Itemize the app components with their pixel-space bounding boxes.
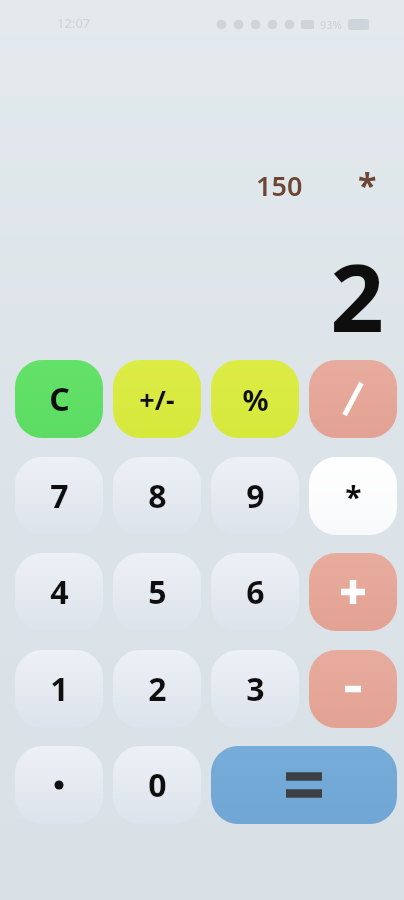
button[interactable]: Subtract: [309, 650, 397, 728]
staticText: 1: [50, 667, 69, 711]
staticText: 8: [148, 474, 167, 518]
button[interactable]: 5: [113, 553, 201, 631]
staticText: 6: [246, 570, 265, 614]
staticText: 5: [148, 570, 167, 614]
button[interactable]: Multiply: [309, 457, 397, 535]
button[interactable]: 1: [15, 650, 103, 728]
staticText: 150: [256, 167, 303, 204]
staticText: 2: [148, 667, 167, 711]
button[interactable]: +/-: [113, 360, 201, 438]
button[interactable]: C: [15, 360, 103, 438]
button[interactable]: 7: [15, 457, 103, 535]
staticText: 0: [148, 763, 167, 807]
staticText: 9: [246, 474, 265, 518]
button[interactable]: %: [211, 360, 299, 438]
staticText: 4: [50, 570, 69, 614]
staticText: +/-: [139, 381, 175, 418]
staticText: 7: [50, 474, 69, 518]
button[interactable]: Equals: [211, 746, 397, 824]
button[interactable]: Decimal point: [15, 746, 103, 824]
button[interactable]: 2: [113, 650, 201, 728]
button[interactable]: 4: [15, 553, 103, 631]
button[interactable]: Add: [309, 553, 397, 631]
staticText: C: [49, 377, 70, 421]
button[interactable]: 8: [113, 457, 201, 535]
button[interactable]: Divide: [309, 360, 397, 438]
staticText: %: [242, 380, 269, 419]
staticText: 3: [246, 667, 265, 711]
staticText: 12:07: [57, 14, 91, 32]
staticText: *: [358, 162, 377, 208]
button[interactable]: 3: [211, 650, 299, 728]
staticText: *: [345, 476, 362, 517]
button[interactable]: 6: [211, 553, 299, 631]
button[interactable]: 0: [113, 746, 201, 824]
button[interactable]: 9: [211, 457, 299, 535]
staticText: 93%: [320, 17, 342, 32]
staticText: 2: [330, 232, 384, 360]
